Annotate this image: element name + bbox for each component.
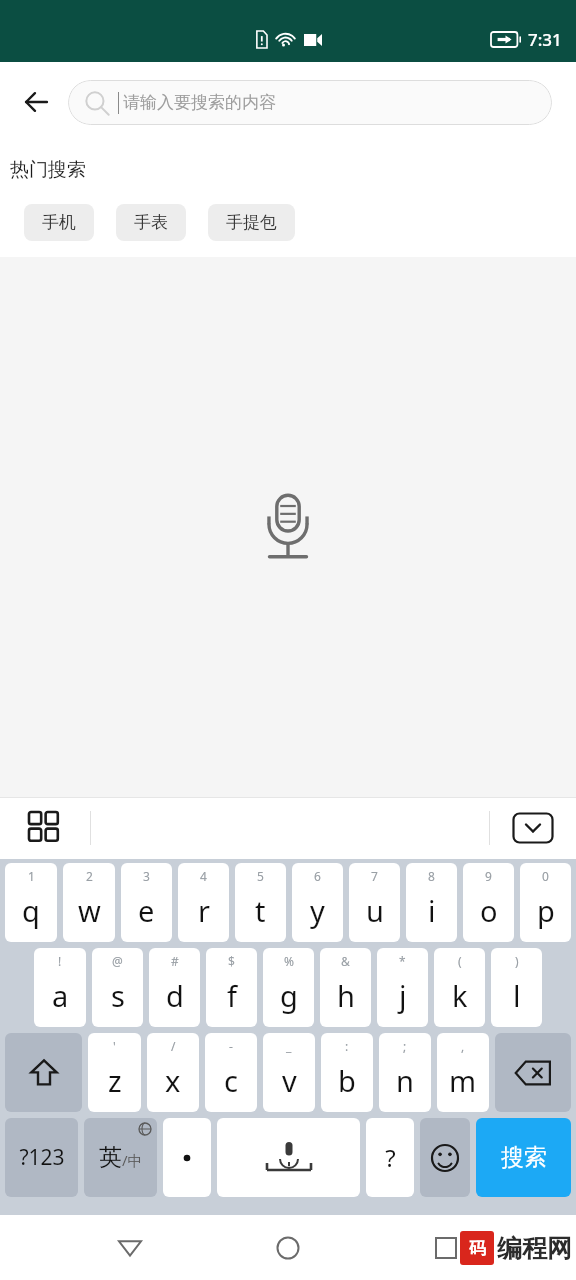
button[interactable]: 英 xyxy=(84,1118,157,1197)
staticText: 7 xyxy=(371,868,378,884)
staticText: ) xyxy=(515,953,519,969)
button[interactable]: 手表 xyxy=(116,204,186,241)
staticText: y xyxy=(310,891,325,930)
staticText: 3 xyxy=(143,868,150,884)
button[interactable]: * xyxy=(377,948,428,1027)
button[interactable]: @ xyxy=(92,948,143,1027)
staticText: 7:31 xyxy=(528,28,562,51)
staticText: o xyxy=(480,891,498,930)
button[interactable]: 2 xyxy=(63,863,115,942)
button[interactable]: ' xyxy=(88,1033,141,1112)
button[interactable]: 7 xyxy=(349,863,400,942)
staticText: ! xyxy=(58,953,62,969)
staticText: w xyxy=(78,891,101,930)
staticText: f xyxy=(227,976,237,1015)
staticText: , xyxy=(461,1038,465,1054)
staticText: g xyxy=(280,976,298,1015)
button[interactable]: 1 xyxy=(5,863,57,942)
staticText: 请输入要搜索的内容 xyxy=(123,92,276,113)
staticText: p xyxy=(537,891,555,930)
staticText: * xyxy=(399,953,406,969)
staticText: d xyxy=(166,976,184,1015)
button[interactable]: 8 xyxy=(406,863,457,942)
button[interactable]: 0 xyxy=(520,863,571,942)
staticText: ? xyxy=(385,1141,396,1174)
staticText: h xyxy=(337,976,355,1015)
button[interactable]: 手机 xyxy=(24,204,94,241)
button[interactable]: ! xyxy=(34,948,86,1027)
staticText: 英 xyxy=(99,1143,122,1172)
button[interactable]: ) xyxy=(491,948,542,1027)
button[interactable]: Recents xyxy=(418,1220,474,1276)
button[interactable]: & xyxy=(320,948,371,1027)
button[interactable]: 搜索 xyxy=(476,1118,571,1197)
button[interactable]: Backspace xyxy=(495,1033,571,1112)
button[interactable]: $ xyxy=(206,948,257,1027)
staticText: _ xyxy=(286,1038,292,1054)
staticText: a xyxy=(52,976,69,1015)
staticText: 4 xyxy=(200,868,207,884)
staticText: / xyxy=(171,1038,176,1054)
staticText: x xyxy=(165,1061,181,1100)
staticText: @ xyxy=(112,953,123,969)
staticText: 码 xyxy=(469,1238,486,1259)
button[interactable]: : xyxy=(321,1033,373,1112)
button[interactable]: 手提包 xyxy=(208,204,295,241)
staticText: 0 xyxy=(542,868,549,884)
button[interactable]: 请输入要搜索的内容 xyxy=(68,80,552,125)
staticText: ?123 xyxy=(19,1143,65,1172)
staticText: m xyxy=(449,1061,477,1100)
staticText: - xyxy=(229,1038,233,1054)
staticText: l xyxy=(513,976,521,1015)
button[interactable]: 9 xyxy=(463,863,514,942)
staticText: v xyxy=(282,1061,297,1100)
staticText: 编程网 xyxy=(497,1233,572,1264)
button[interactable]: Back xyxy=(102,1220,158,1276)
button[interactable]: Back xyxy=(14,80,58,124)
staticText: q xyxy=(22,891,40,930)
staticText: # xyxy=(171,953,179,969)
button[interactable]: Home xyxy=(260,1220,316,1276)
staticText: : xyxy=(345,1038,349,1054)
button[interactable]: ?123 xyxy=(5,1118,78,1197)
staticText: /中 xyxy=(122,1150,143,1170)
staticText: % xyxy=(284,953,294,969)
button[interactable]: Emoji xyxy=(420,1118,470,1197)
button[interactable]: 3 xyxy=(121,863,172,942)
button[interactable]: / xyxy=(147,1033,199,1112)
staticText: u xyxy=(366,891,384,930)
staticText: 热门搜索 xyxy=(10,158,86,182)
staticText: 手表 xyxy=(134,212,168,233)
button[interactable]: Period xyxy=(163,1118,211,1197)
button[interactable]: # xyxy=(149,948,200,1027)
staticText: 手提包 xyxy=(226,212,277,233)
button[interactable]: , xyxy=(437,1033,489,1112)
staticText: s xyxy=(111,976,125,1015)
button[interactable]: Keyboard modes xyxy=(22,805,68,851)
staticText: t xyxy=(255,891,266,930)
button[interactable]: ; xyxy=(379,1033,431,1112)
staticText: 9 xyxy=(485,868,492,884)
staticText: 手机 xyxy=(42,212,76,233)
button[interactable]: Hide keyboard xyxy=(510,810,556,846)
staticText: ; xyxy=(403,1038,407,1054)
button[interactable]: % xyxy=(263,948,314,1027)
button[interactable]: - xyxy=(205,1033,257,1112)
staticText: ' xyxy=(113,1038,116,1054)
staticText: 6 xyxy=(314,868,321,884)
button[interactable]: 4 xyxy=(178,863,229,942)
staticText: z xyxy=(108,1061,122,1100)
button[interactable]: Space xyxy=(217,1118,360,1197)
button[interactable]: _ xyxy=(263,1033,315,1112)
button[interactable]: ? xyxy=(366,1118,414,1197)
button[interactable]: ( xyxy=(434,948,485,1027)
staticText: 2 xyxy=(86,868,93,884)
staticText: 5 xyxy=(257,868,264,884)
staticText: 搜索 xyxy=(501,1143,547,1172)
staticText: j xyxy=(399,976,407,1015)
staticText: ( xyxy=(458,953,462,969)
button[interactable]: Shift xyxy=(5,1033,82,1112)
button[interactable]: 5 xyxy=(235,863,286,942)
staticText: 8 xyxy=(428,868,435,884)
button[interactable]: 6 xyxy=(292,863,343,942)
